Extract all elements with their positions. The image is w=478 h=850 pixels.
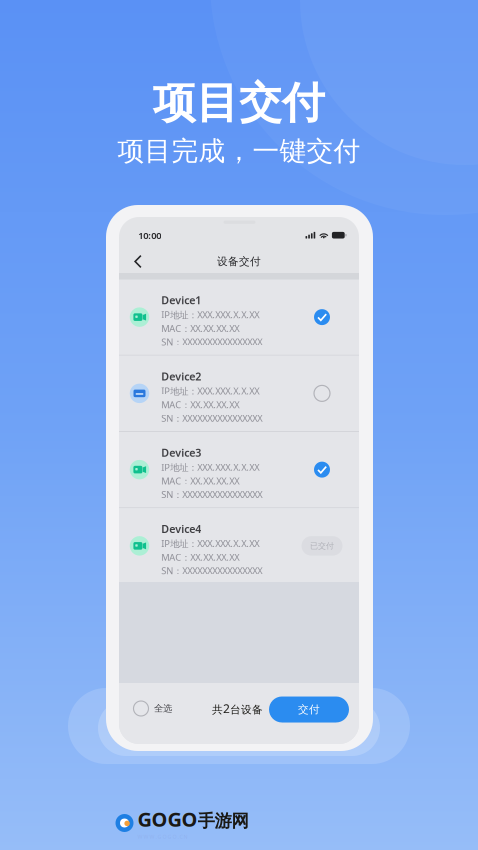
staticText: 共2台设备 (212, 700, 263, 716)
staticText: MAC：XX.XX.XX.XX (161, 551, 239, 563)
staticText: IP地址：XXX.XXX.X.X.XX (161, 537, 259, 549)
button[interactable]: 全选 (129, 695, 199, 722)
button[interactable]: Device4 (119, 508, 359, 583)
staticText: MAC：XX.XX.XX.XX (161, 475, 239, 487)
staticText: IP地址：XXX.XXX.X.X.XX (161, 461, 259, 473)
staticText: 交付 (298, 703, 320, 716)
staticText: 全选 (154, 703, 172, 714)
staticText: SN：XXXXXXXXXXXXXXXX (161, 412, 262, 424)
staticText: 设备交付 (217, 255, 261, 268)
staticText: Device1 (161, 293, 201, 307)
staticText: 10:00 (138, 229, 161, 242)
staticText: 项目完成，一键交付 (117, 135, 360, 167)
staticText: Device2 (161, 369, 201, 383)
staticText: SN：XXXXXXXXXXXXXXXX (161, 488, 262, 501)
staticText: SN：XXXXXXXXXXXXXXXX (161, 336, 262, 348)
button[interactable]: Device2 (119, 356, 359, 431)
staticText: MAC：XX.XX.XX.XX (161, 398, 239, 411)
staticText: GOGO手游网 (137, 806, 248, 832)
staticText: MAC：XX.XX.XX.XX (161, 322, 239, 334)
staticText: Device4 (161, 522, 201, 536)
staticText: IP地址：XXX.XXX.X.X.XX (161, 308, 259, 321)
staticText: IP地址：XXX.XXX.X.X.XX (161, 385, 259, 397)
staticText: SN：XXXXXXXXXXXXXXXX (161, 564, 262, 577)
staticText: 项目交付 (153, 77, 325, 129)
button[interactable]: Device1 (119, 279, 359, 355)
staticText: 已交付 (310, 541, 334, 551)
button[interactable]: Device3 (119, 432, 359, 507)
staticText: Device3 (161, 445, 201, 460)
button[interactable]: 交付 (269, 696, 349, 722)
button[interactable]: 返回 (124, 249, 152, 274)
